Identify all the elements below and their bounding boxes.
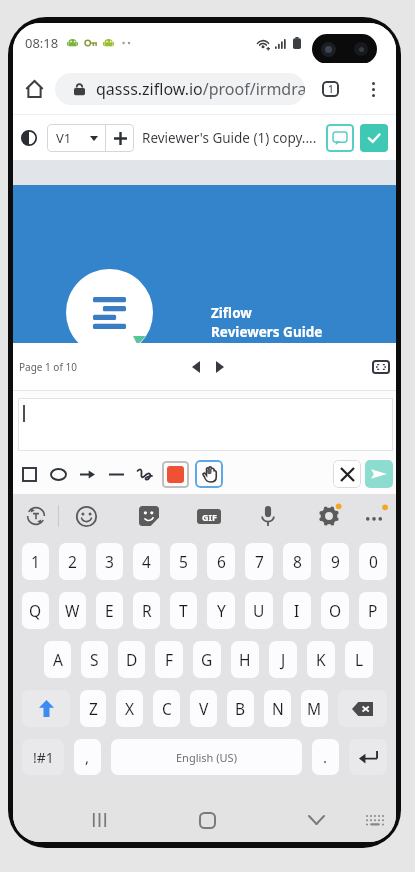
button[interactable]: 5: [170, 543, 197, 580]
button[interactable]: L: [345, 641, 373, 678]
button[interactable]: 3: [96, 543, 123, 580]
staticText: Reviewers Guide: [211, 323, 323, 341]
staticText: 8: [293, 551, 302, 572]
button[interactable]: P: [359, 592, 387, 629]
staticText: N: [272, 698, 284, 719]
button[interactable]: 1: [22, 543, 49, 580]
staticText: 5: [179, 551, 188, 572]
staticText: Q: [29, 600, 42, 621]
button[interactable]: Comment: [326, 124, 354, 152]
button[interactable]: 7: [245, 543, 273, 580]
button[interactable]: Shift: [22, 690, 70, 727]
button[interactable]: O: [321, 592, 349, 629]
button[interactable]: Voice input: [247, 495, 289, 537]
button[interactable]: D: [118, 641, 145, 678]
button[interactable]: S: [81, 641, 108, 678]
button[interactable]: 0: [359, 543, 387, 580]
button[interactable]: R: [133, 592, 160, 629]
button[interactable]: T: [170, 592, 197, 629]
staticText: L: [355, 649, 364, 670]
staticText: 7: [255, 551, 264, 572]
button[interactable]: Rectangle: [16, 461, 42, 487]
button[interactable]: Line: [103, 461, 129, 487]
staticText: 0: [369, 551, 378, 572]
staticText: A: [53, 649, 63, 670]
button[interactable]: E: [96, 592, 123, 629]
button[interactable]: Home: [14, 69, 54, 109]
button[interactable]: C: [153, 690, 180, 727]
button[interactable]: Previous page: [184, 355, 208, 379]
button[interactable]: H: [231, 641, 259, 678]
button[interactable]: G: [193, 641, 221, 678]
button[interactable]: Fit to screen: [368, 354, 394, 380]
button[interactable]: Navigation: [194, 807, 220, 833]
button[interactable]: Space: [111, 739, 302, 775]
button[interactable]: A: [44, 641, 71, 678]
button[interactable]: 8: [283, 543, 311, 580]
button[interactable]: More options: [358, 74, 388, 104]
button[interactable]: Emoji: [65, 495, 107, 537]
button[interactable]: Tabs: [315, 74, 345, 104]
button[interactable]: B: [227, 690, 254, 727]
button[interactable]: Add: [106, 124, 134, 152]
button[interactable]: qasss.ziflow.io/proof/irmdra: [55, 73, 305, 105]
button[interactable]: Period: [312, 739, 339, 775]
button[interactable]: I: [283, 592, 311, 629]
button[interactable]: M: [301, 690, 328, 727]
staticText: Ziflow: [211, 304, 252, 322]
button[interactable]: K: [307, 641, 335, 678]
staticText: .: [323, 747, 328, 767]
staticText: V1: [56, 129, 72, 147]
button[interactable]: 2: [59, 543, 86, 580]
button[interactable]: N: [264, 690, 291, 727]
button[interactable]: Backspace: [338, 690, 387, 727]
button[interactable]: F: [155, 641, 183, 678]
button[interactable]: Contrast: [14, 123, 44, 153]
button[interactable]: Navigation: [86, 807, 112, 833]
button[interactable]: Ellipse: [45, 461, 71, 487]
button[interactable]: Color: [162, 461, 189, 488]
button[interactable]: Q: [22, 592, 49, 629]
staticText: 2: [68, 551, 77, 572]
button[interactable]: [18, 398, 393, 451]
button[interactable]: GIF: [188, 495, 230, 537]
staticText: F: [165, 649, 174, 670]
button[interactable]: Approve: [360, 124, 388, 152]
button[interactable]: X: [116, 690, 143, 727]
staticText: O: [329, 600, 342, 621]
button[interactable]: Freehand: [131, 461, 157, 487]
button[interactable]: Symbols: [22, 739, 64, 775]
button[interactable]: Y: [207, 592, 235, 629]
button[interactable]: More: [353, 495, 395, 537]
staticText: P: [368, 600, 378, 621]
staticText: !#1: [33, 748, 54, 767]
staticText: 9: [331, 551, 340, 572]
button[interactable]: J: [269, 641, 297, 678]
button[interactable]: 9: [321, 543, 349, 580]
button[interactable]: Translate: [15, 495, 57, 537]
button[interactable]: Navigation: [303, 807, 329, 833]
button[interactable]: U: [245, 592, 273, 629]
button[interactable]: V1: [47, 124, 105, 152]
button[interactable]: W: [59, 592, 86, 629]
button[interactable]: Next page: [208, 355, 232, 379]
staticText: 1: [31, 551, 40, 572]
button[interactable]: Z: [80, 690, 106, 727]
button[interactable]: Send: [365, 460, 393, 488]
button[interactable]: Cancel: [333, 460, 361, 488]
staticText: 4: [142, 551, 151, 572]
button[interactable]: Pan: [195, 460, 223, 488]
button[interactable]: Comma: [74, 739, 101, 775]
staticText: S: [90, 649, 99, 670]
button[interactable]: Settings: [308, 495, 350, 537]
button[interactable]: Stickers: [128, 495, 170, 537]
staticText: GIF: [202, 511, 217, 523]
button[interactable]: V: [190, 690, 217, 727]
button[interactable]: Navigation: [362, 807, 388, 833]
button[interactable]: 4: [133, 543, 160, 580]
button[interactable]: 6: [207, 543, 235, 580]
staticText: 1: [328, 82, 334, 96]
button[interactable]: Enter: [349, 739, 387, 775]
staticText: X: [125, 698, 135, 719]
button[interactable]: Arrow: [74, 461, 100, 487]
